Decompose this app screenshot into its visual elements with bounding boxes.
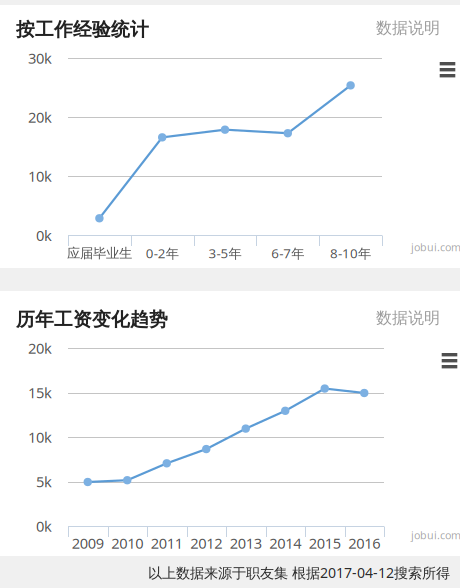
staticText: 0k: [36, 516, 52, 536]
staticText: 数据说明: [376, 308, 440, 328]
staticText: 以上数据来源于职友集 根据2017-04-12搜索所得: [148, 563, 450, 582]
staticText: 2010: [111, 533, 143, 553]
staticText: 10k: [28, 166, 52, 186]
staticText: 2014: [269, 533, 301, 553]
staticText: 按工作经验统计: [16, 18, 149, 41]
button[interactable]: Chart menu: [438, 62, 457, 77]
staticText: 2012: [190, 533, 222, 553]
staticText: 2015: [309, 533, 341, 553]
staticText: 2011: [151, 533, 183, 553]
button[interactable]: 数据说明: [370, 305, 440, 331]
staticText: 30k: [28, 48, 52, 68]
button[interactable]: 数据说明: [370, 15, 440, 41]
staticText: 8-10年: [330, 244, 371, 262]
staticText: 20k: [28, 338, 52, 358]
staticText: 5k: [36, 472, 52, 491]
staticText: 15k: [28, 383, 52, 402]
staticText: 0k: [36, 225, 52, 245]
staticText: jobui.com: [411, 240, 460, 254]
staticText: jobui.com: [411, 528, 460, 542]
staticText: 10k: [28, 427, 52, 447]
staticText: 0-2年: [146, 244, 179, 262]
staticText: 2016: [348, 533, 380, 553]
staticText: 6-7年: [271, 244, 304, 262]
staticText: 数据说明: [376, 18, 440, 38]
staticText: 应届毕业生: [67, 245, 132, 261]
staticText: 2013: [230, 533, 262, 553]
staticText: 历年工资变化趋势: [16, 308, 168, 331]
button[interactable]: Chart menu: [440, 353, 459, 368]
staticText: 2009: [72, 533, 104, 553]
staticText: 3-5年: [208, 244, 241, 262]
staticText: 20k: [28, 107, 52, 127]
